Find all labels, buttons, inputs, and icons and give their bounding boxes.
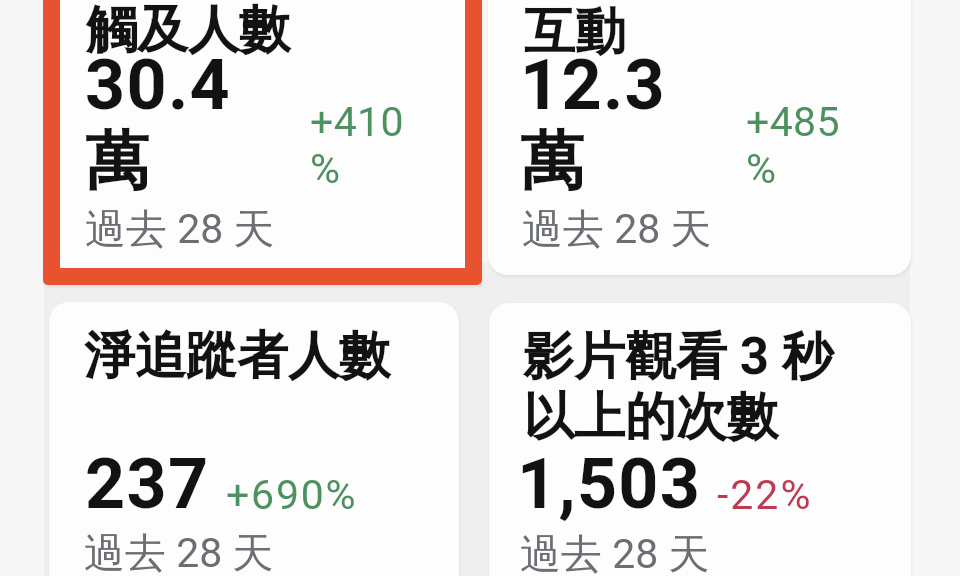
button[interactable]: 影片觀看 3 秒 以上的次數 [489,303,911,576]
staticText: 1,503 [517,446,702,524]
staticText: 237 [85,446,210,524]
staticText: +410 % [310,99,404,193]
button[interactable]: 觸及人數 [43,0,482,285]
staticText: 淨追蹤者人數 [84,328,390,388]
staticText: 影片觀看 3 秒 以上的次數 [523,326,833,449]
staticText: +485 % [746,99,840,193]
button[interactable]: 淨追蹤者人數 [49,302,459,576]
staticText: 30.4 萬 [85,47,232,203]
staticText: 互動 [524,4,626,64]
staticText: 12.3 萬 [520,47,667,203]
staticText: 過去 28 天 [85,205,275,255]
staticText: 過去 28 天 [522,205,712,255]
staticText: -22% [717,472,813,519]
staticText: 過去 28 天 [84,529,274,576]
staticText: 觸及人數 [86,2,290,62]
button[interactable]: 互動 [488,0,911,275]
staticText: 過去 28 天 [520,530,710,576]
staticText: +690% [226,472,358,519]
